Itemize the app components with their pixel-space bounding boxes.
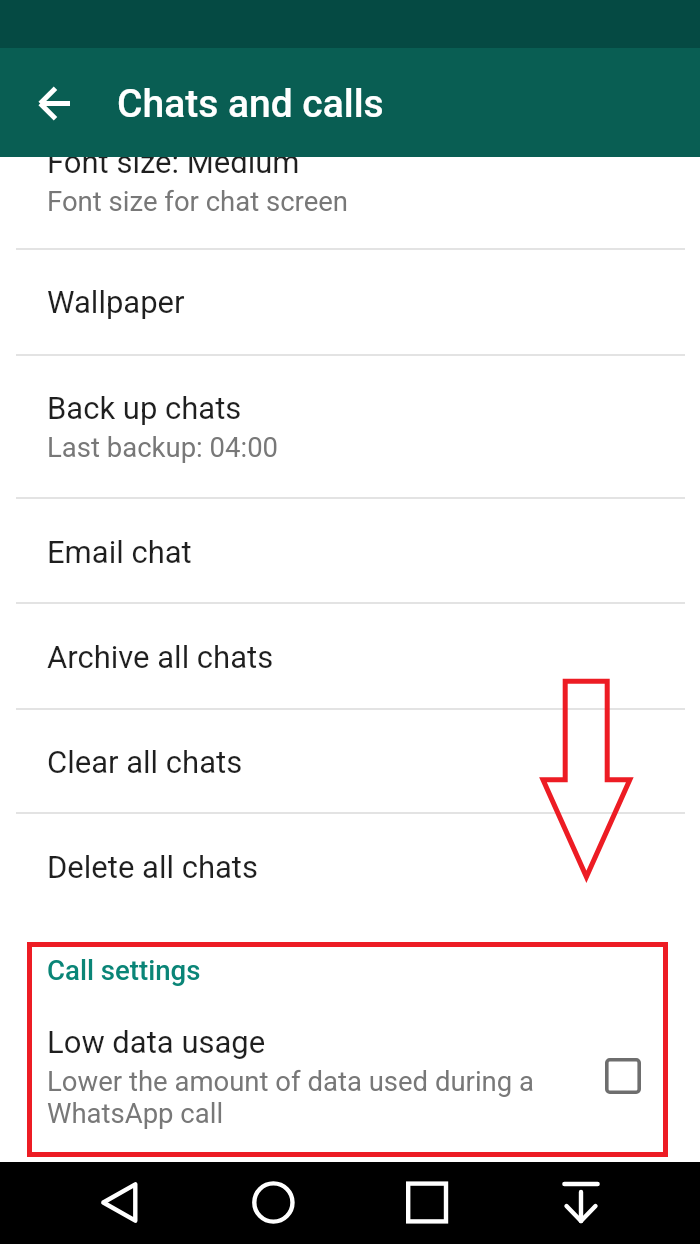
- staticText: Clear all chats: [47, 744, 243, 780]
- staticText: Back up chats: [47, 390, 242, 426]
- staticText: Delete all chats: [47, 849, 258, 885]
- staticText: Call settings: [47, 954, 201, 986]
- button[interactable]: Low data usage checkbox: [560, 1006, 700, 1146]
- staticText: Lower the amount of data used during a W…: [47, 1065, 560, 1130]
- staticText: Wallpaper: [47, 284, 185, 320]
- button[interactable]: Wallpaper: [0, 248, 700, 352]
- staticText: Last backup: 04:00: [47, 431, 279, 463]
- button[interactable]: Back up chats: [0, 352, 700, 497]
- staticText: Low data usage: [47, 1024, 266, 1060]
- button[interactable]: Back: [22, 71, 86, 135]
- staticText: Archive all chats: [47, 639, 274, 675]
- staticText: Font size: Medium: [47, 144, 300, 180]
- button[interactable]: Home: [196, 1162, 350, 1244]
- staticText: Email chat: [47, 534, 192, 570]
- button[interactable]: Recent apps: [350, 1162, 504, 1244]
- button[interactable]: Low data usage: [0, 1006, 700, 1146]
- button[interactable]: Font size: Medium: [0, 113, 700, 243]
- staticText: Chats and calls: [117, 81, 384, 127]
- button[interactable]: Archive all chats: [0, 602, 700, 707]
- staticText: Font size for chat screen: [47, 185, 349, 217]
- button[interactable]: Delete all chats: [0, 812, 700, 917]
- button[interactable]: Clear all chats: [0, 707, 700, 812]
- button[interactable]: Back: [0, 1162, 196, 1244]
- button[interactable]: Email chat: [0, 497, 700, 602]
- button[interactable]: Download: [504, 1162, 700, 1244]
